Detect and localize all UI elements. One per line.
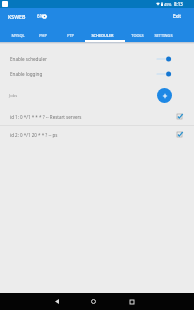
button[interactable]: Home [84,293,103,310]
button[interactable]: id 2: 0 */1 20 * * ? -- ps [0,127,194,142]
staticText: TOOLS [131,33,144,38]
button[interactable]: Exit [161,8,194,24]
staticText: id 1: 0 */1 * * * ? -- Restart servers [10,114,82,120]
staticText: 8:13 [174,1,183,7]
staticText: KSWEB [8,13,26,20]
staticText: SCHEDULER [91,33,114,38]
button[interactable]: Back [47,293,66,310]
button[interactable]: Add job [157,88,172,103]
button[interactable]: SETTINGS [148,24,178,42]
button[interactable]: id 1: 0 */1 * * * ? -- Restart servers [0,109,194,124]
button[interactable]: Settings [42,14,47,19]
button[interactable]: FTP [59,24,81,42]
staticText: Enable scheduler [10,56,47,62]
staticText: Exit [173,13,182,19]
staticText: Enable logging [10,71,43,77]
staticText: MYSQL [11,33,25,38]
button[interactable]: Enable scheduler [0,51,194,67]
button[interactable]: SCHEDULER [82,24,122,42]
staticText: SETTINGS [154,33,173,38]
staticText: id 2: 0 */1 20 * * ? -- ps [10,132,58,138]
staticText: FTP [67,33,74,38]
staticText: 6% [37,13,44,19]
button[interactable]: Enable logging [0,66,194,82]
button[interactable]: PHP [32,24,54,42]
button[interactable]: Recent apps [122,293,141,310]
staticText: 45% [164,2,172,7]
button[interactable]: MYSQL [5,24,31,42]
staticText: PHP [39,33,47,38]
button[interactable]: TOOLS [124,24,150,42]
staticText: Jobs [9,93,18,99]
